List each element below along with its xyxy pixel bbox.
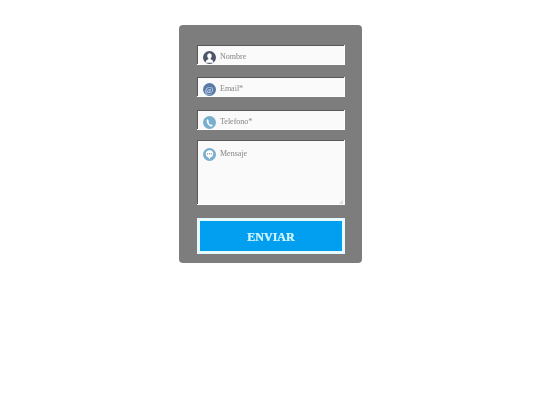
- button[interactable]: Phone: [197, 110, 345, 130]
- button[interactable]: Message: [197, 140, 345, 205]
- staticText: Mensaje: [220, 149, 248, 158]
- other: Name: [203, 51, 216, 64]
- staticText: Telefono*: [220, 117, 253, 126]
- staticText: Nombre: [220, 52, 247, 61]
- button[interactable]: Email: [197, 77, 345, 97]
- staticText: @: [205, 85, 214, 95]
- other: Email: [203, 83, 216, 96]
- staticText: Email*: [220, 84, 244, 93]
- button[interactable]: ENVIAR: [197, 218, 345, 254]
- other: Message: [203, 148, 216, 161]
- button[interactable]: Name: [197, 45, 345, 65]
- other: Phone: [203, 116, 216, 129]
- staticText: ENVIAR: [247, 230, 295, 243]
